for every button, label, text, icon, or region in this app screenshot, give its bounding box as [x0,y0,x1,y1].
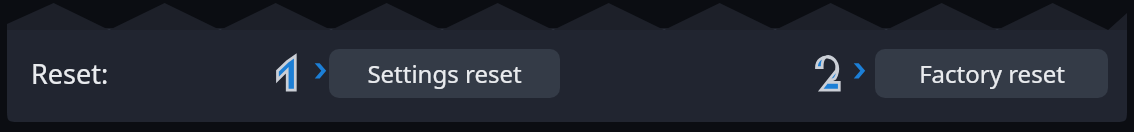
button[interactable]: Factory reset [875,49,1108,98]
button[interactable]: Step 2 [815,51,869,95]
staticText: Settings reset [367,57,522,90]
button[interactable]: Settings reset [329,49,560,98]
staticText: Reset: [31,55,109,92]
staticText: Factory reset [919,57,1065,90]
button[interactable]: Step 1 [276,51,330,95]
